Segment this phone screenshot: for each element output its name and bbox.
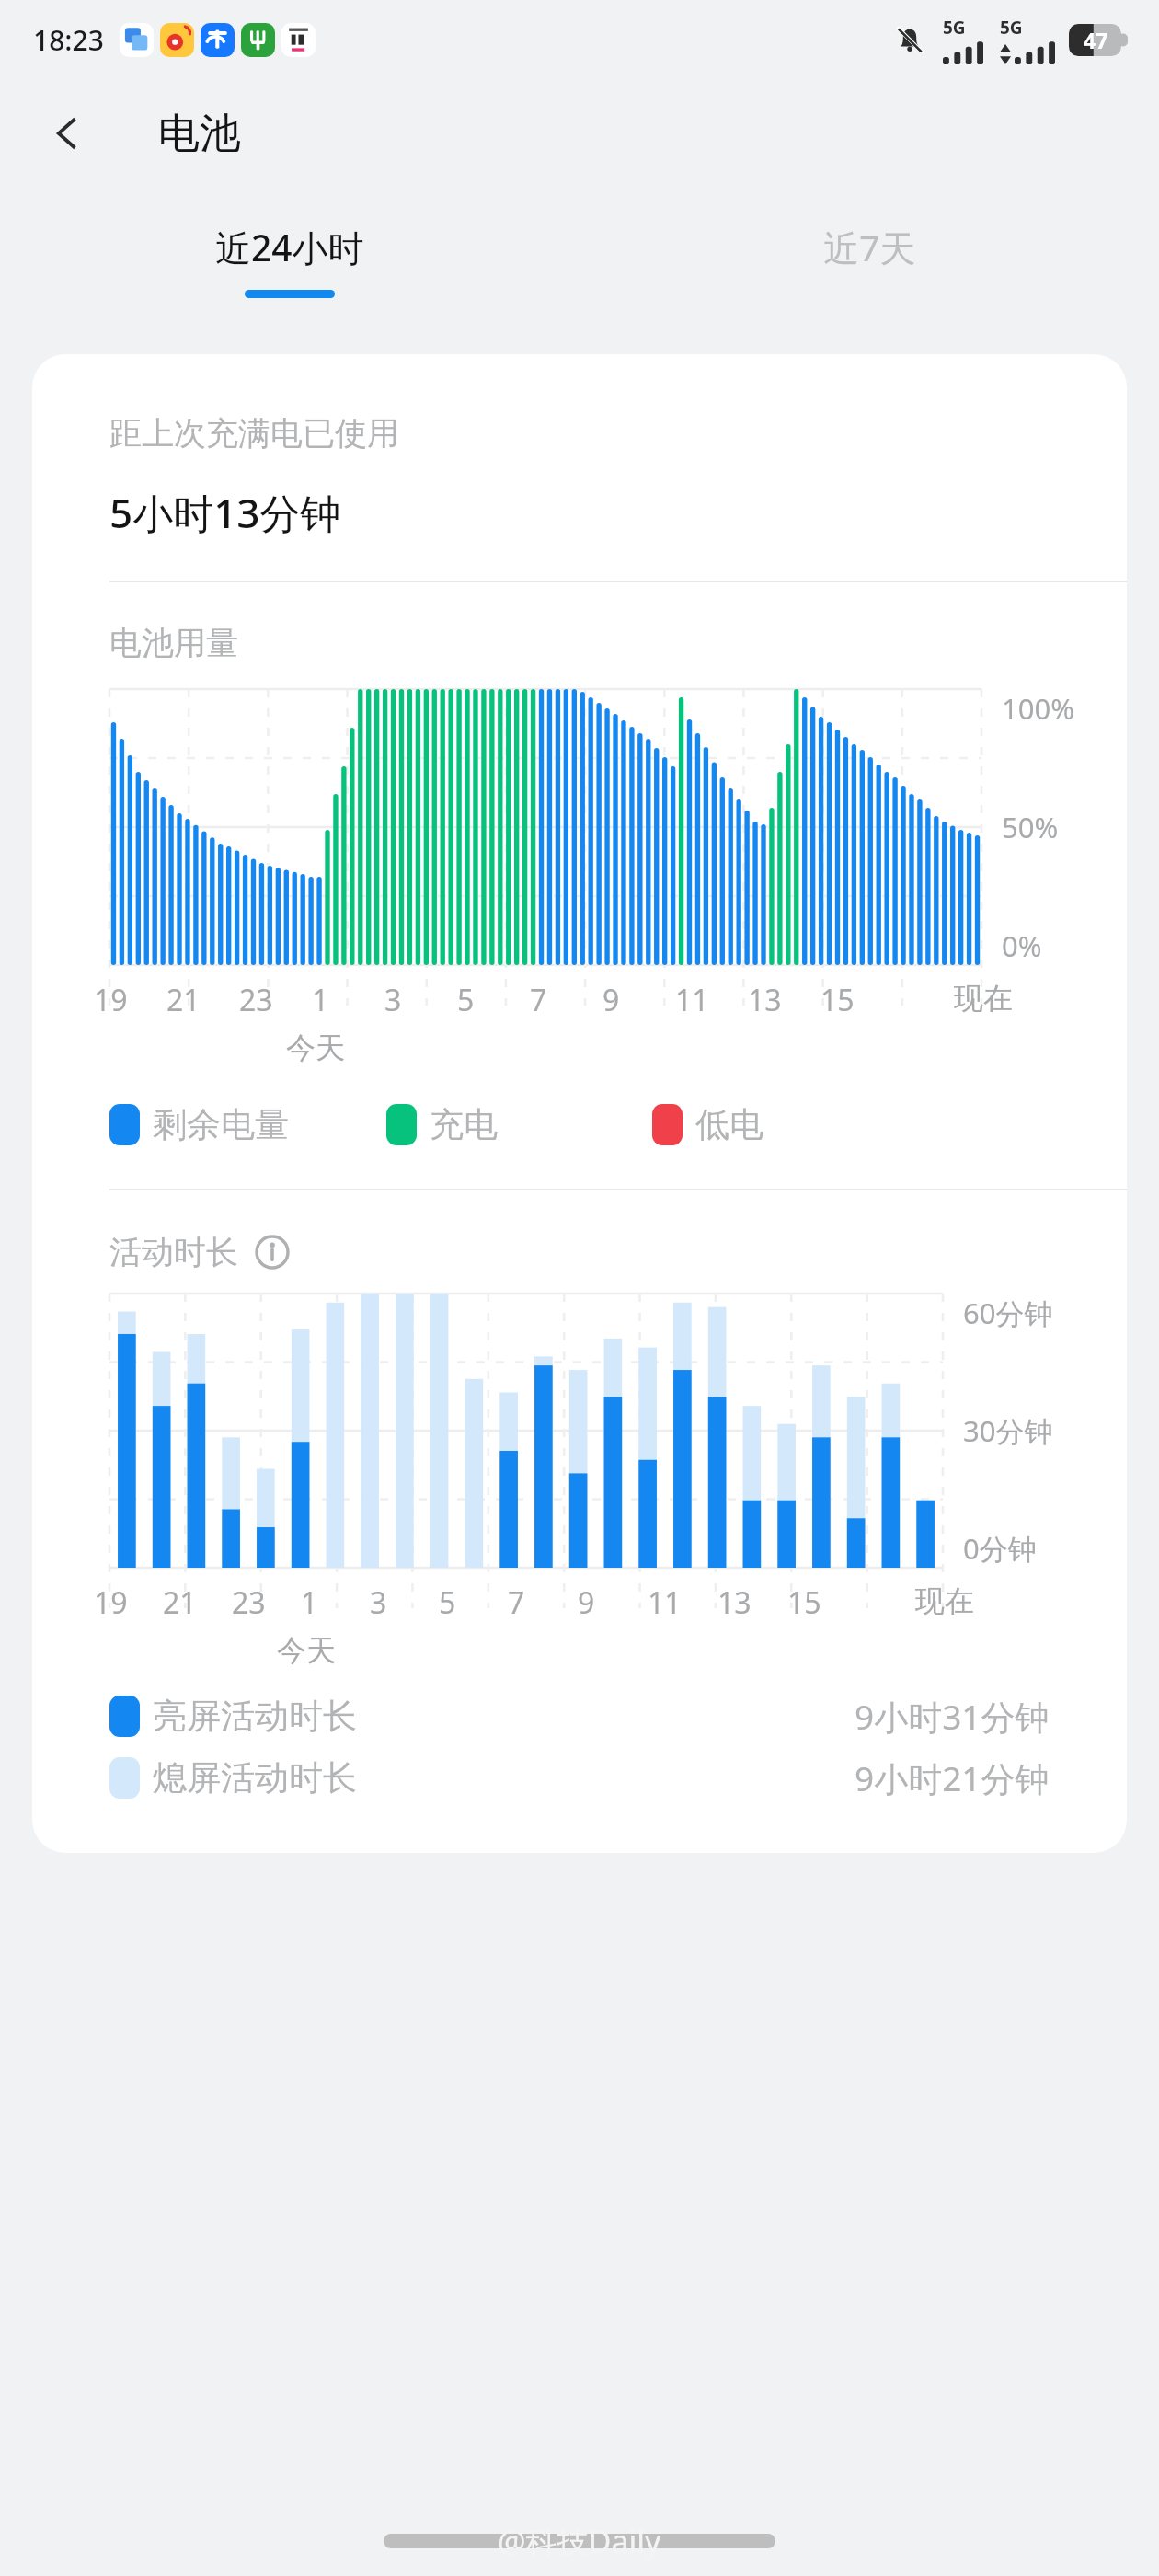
staticText: 23: [232, 1582, 266, 1623]
staticText: 60分钟: [963, 1294, 1053, 1332]
staticText: 距上次充满电已使用: [109, 413, 399, 454]
button[interactable]: 近24小时: [0, 188, 579, 332]
staticText: 今天: [277, 1632, 336, 1669]
staticText: 13: [717, 1582, 752, 1623]
staticText: 7: [530, 980, 547, 1020]
staticText: 47: [1084, 26, 1108, 54]
button[interactable]: Info: [251, 1231, 293, 1273]
staticText: 5G: [1000, 16, 1023, 40]
staticText: 5: [439, 1582, 456, 1623]
staticText: 100%: [1002, 689, 1074, 728]
staticText: 21: [163, 1582, 197, 1623]
staticText: 30分钟: [963, 1411, 1053, 1450]
staticText: 熄屏活动时长: [153, 1756, 357, 1800]
staticText: 近24小时: [215, 223, 364, 271]
staticText: 充电: [430, 1103, 498, 1146]
staticText: 13: [748, 980, 782, 1020]
staticText: 近7天: [823, 223, 916, 271]
staticText: 23: [239, 980, 273, 1020]
staticText: 现在: [915, 1582, 974, 1619]
button[interactable]: 近7天: [579, 188, 1159, 332]
staticText: 5G: [943, 16, 966, 40]
staticText: 9小时21分钟: [855, 1754, 1050, 1801]
staticText: 11: [675, 980, 709, 1020]
staticText: 3: [384, 980, 402, 1020]
staticText: 亮屏活动时长: [153, 1695, 357, 1738]
staticText: 0分钟: [963, 1529, 1037, 1568]
staticText: 电池: [158, 108, 241, 160]
staticText: @科技Daily: [498, 2520, 661, 2562]
staticText: 11: [648, 1582, 682, 1623]
staticText: 0%: [1002, 926, 1042, 965]
staticText: 9: [578, 1582, 595, 1623]
staticText: 15: [820, 980, 855, 1020]
staticText: 5小时13分钟: [109, 485, 341, 540]
staticText: 9: [602, 980, 620, 1020]
staticText: 21: [166, 980, 201, 1020]
staticText: 今天: [286, 1029, 345, 1066]
staticText: 9小时31分钟: [855, 1693, 1050, 1740]
button[interactable]: Back: [28, 94, 107, 173]
staticText: 剩余电量: [153, 1103, 289, 1146]
staticText: 19: [94, 1582, 128, 1623]
staticText: 低电: [695, 1103, 763, 1146]
staticText: 现在: [954, 980, 1013, 1017]
staticText: 5: [457, 980, 475, 1020]
staticText: 3: [370, 1582, 387, 1623]
staticText: 1: [312, 980, 329, 1020]
staticText: 7: [508, 1582, 525, 1623]
staticText: 18:23: [33, 21, 104, 59]
staticText: 电池用量: [109, 623, 238, 663]
staticText: 19: [94, 980, 128, 1020]
staticText: 活动时长: [109, 1232, 238, 1272]
staticText: 1: [301, 1582, 318, 1623]
staticText: 50%: [1002, 808, 1059, 846]
staticText: 15: [787, 1582, 821, 1623]
